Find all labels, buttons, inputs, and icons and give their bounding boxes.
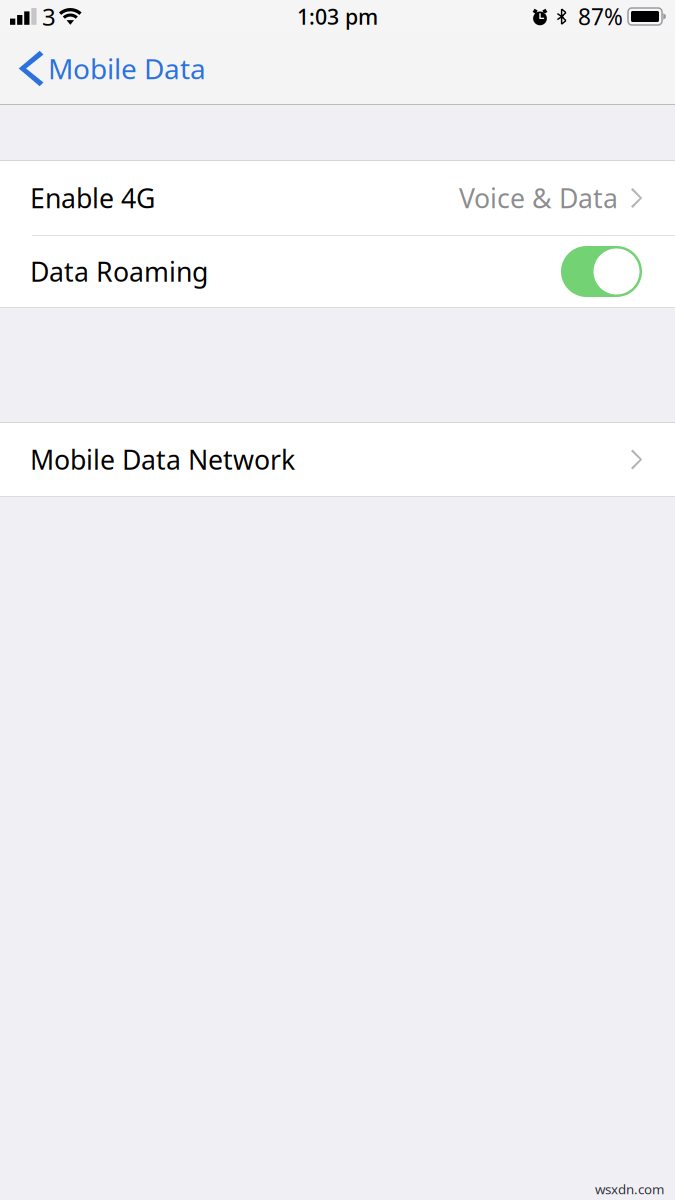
staticText: 1:03 pm [297,2,378,31]
button[interactable]: Data Roaming [0,236,675,307]
staticText: Mobile Data Network [30,442,295,477]
button[interactable]: Mobile Data Network [0,423,675,496]
staticText: Mobile Data [48,50,206,87]
staticText: 87% [578,1,623,31]
button[interactable]: Enable 4G [0,161,675,235]
staticText: Voice & Data [459,180,618,216]
staticText: wsxdn.com [595,1180,664,1198]
staticText: Enable 4G [30,180,155,216]
staticText: Data Roaming [30,254,208,289]
staticText: 3 [42,1,56,32]
button[interactable]: Mobile Data [0,33,220,104]
